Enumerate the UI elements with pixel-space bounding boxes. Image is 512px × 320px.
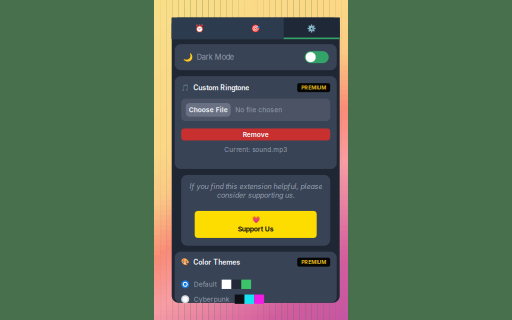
staticText: Color Themes <box>193 258 240 266</box>
staticText: Custom Ringtone <box>193 83 249 92</box>
staticText: 🎯 <box>251 24 260 33</box>
staticText: PREMIUM <box>301 84 326 91</box>
staticText: 💗 <box>252 216 260 223</box>
staticText: No file chosen <box>235 106 282 114</box>
button[interactable]: 🌙 <box>175 44 337 70</box>
staticText: Remove <box>243 130 269 138</box>
staticText: Support Us <box>238 225 274 233</box>
button[interactable]: Focus <box>228 18 284 39</box>
staticText: Dark Mode <box>197 53 234 62</box>
button[interactable]: Settings <box>284 18 340 39</box>
staticText: Choose File <box>189 106 228 114</box>
staticText: Cyberpunk <box>194 295 230 303</box>
button[interactable]: Alarms <box>172 18 228 39</box>
staticText: ⏰ <box>195 24 204 33</box>
staticText: Current: sound.mp3 <box>224 146 287 154</box>
staticText: 🎨 <box>181 258 189 266</box>
button[interactable]: Default <box>181 280 330 289</box>
button[interactable]: Choose File <box>181 99 330 121</box>
button[interactable]: 💗 <box>195 211 317 238</box>
staticText: ⚙️ <box>307 24 316 33</box>
button[interactable]: Remove <box>181 128 330 140</box>
staticText: PREMIUM <box>301 259 326 265</box>
staticText: If you find this extension helpful, plea… <box>189 182 322 199</box>
staticText: Default <box>194 280 217 288</box>
button[interactable]: Cyberpunk <box>181 295 330 304</box>
staticText: 🌙 <box>183 52 193 62</box>
staticText: 🎵 <box>181 84 189 91</box>
